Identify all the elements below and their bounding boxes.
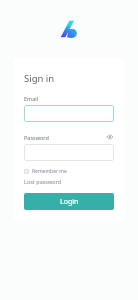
- staticText: Password: [24, 134, 49, 141]
- button[interactable]: Show password: [106, 133, 114, 141]
- button[interactable]: Lost password: [24, 178, 62, 185]
- staticText: Email: [24, 95, 39, 102]
- staticText: Sign in: [24, 72, 55, 85]
- other: App logo: [60, 20, 78, 38]
- button[interactable]: [24, 144, 114, 161]
- staticText: Remember me: [32, 168, 67, 175]
- staticText: Lost password: [24, 178, 62, 185]
- button[interactable]: Remember me: [24, 168, 67, 175]
- button[interactable]: [24, 105, 114, 122]
- button[interactable]: Login: [24, 193, 114, 210]
- staticText: Login: [60, 197, 79, 207]
